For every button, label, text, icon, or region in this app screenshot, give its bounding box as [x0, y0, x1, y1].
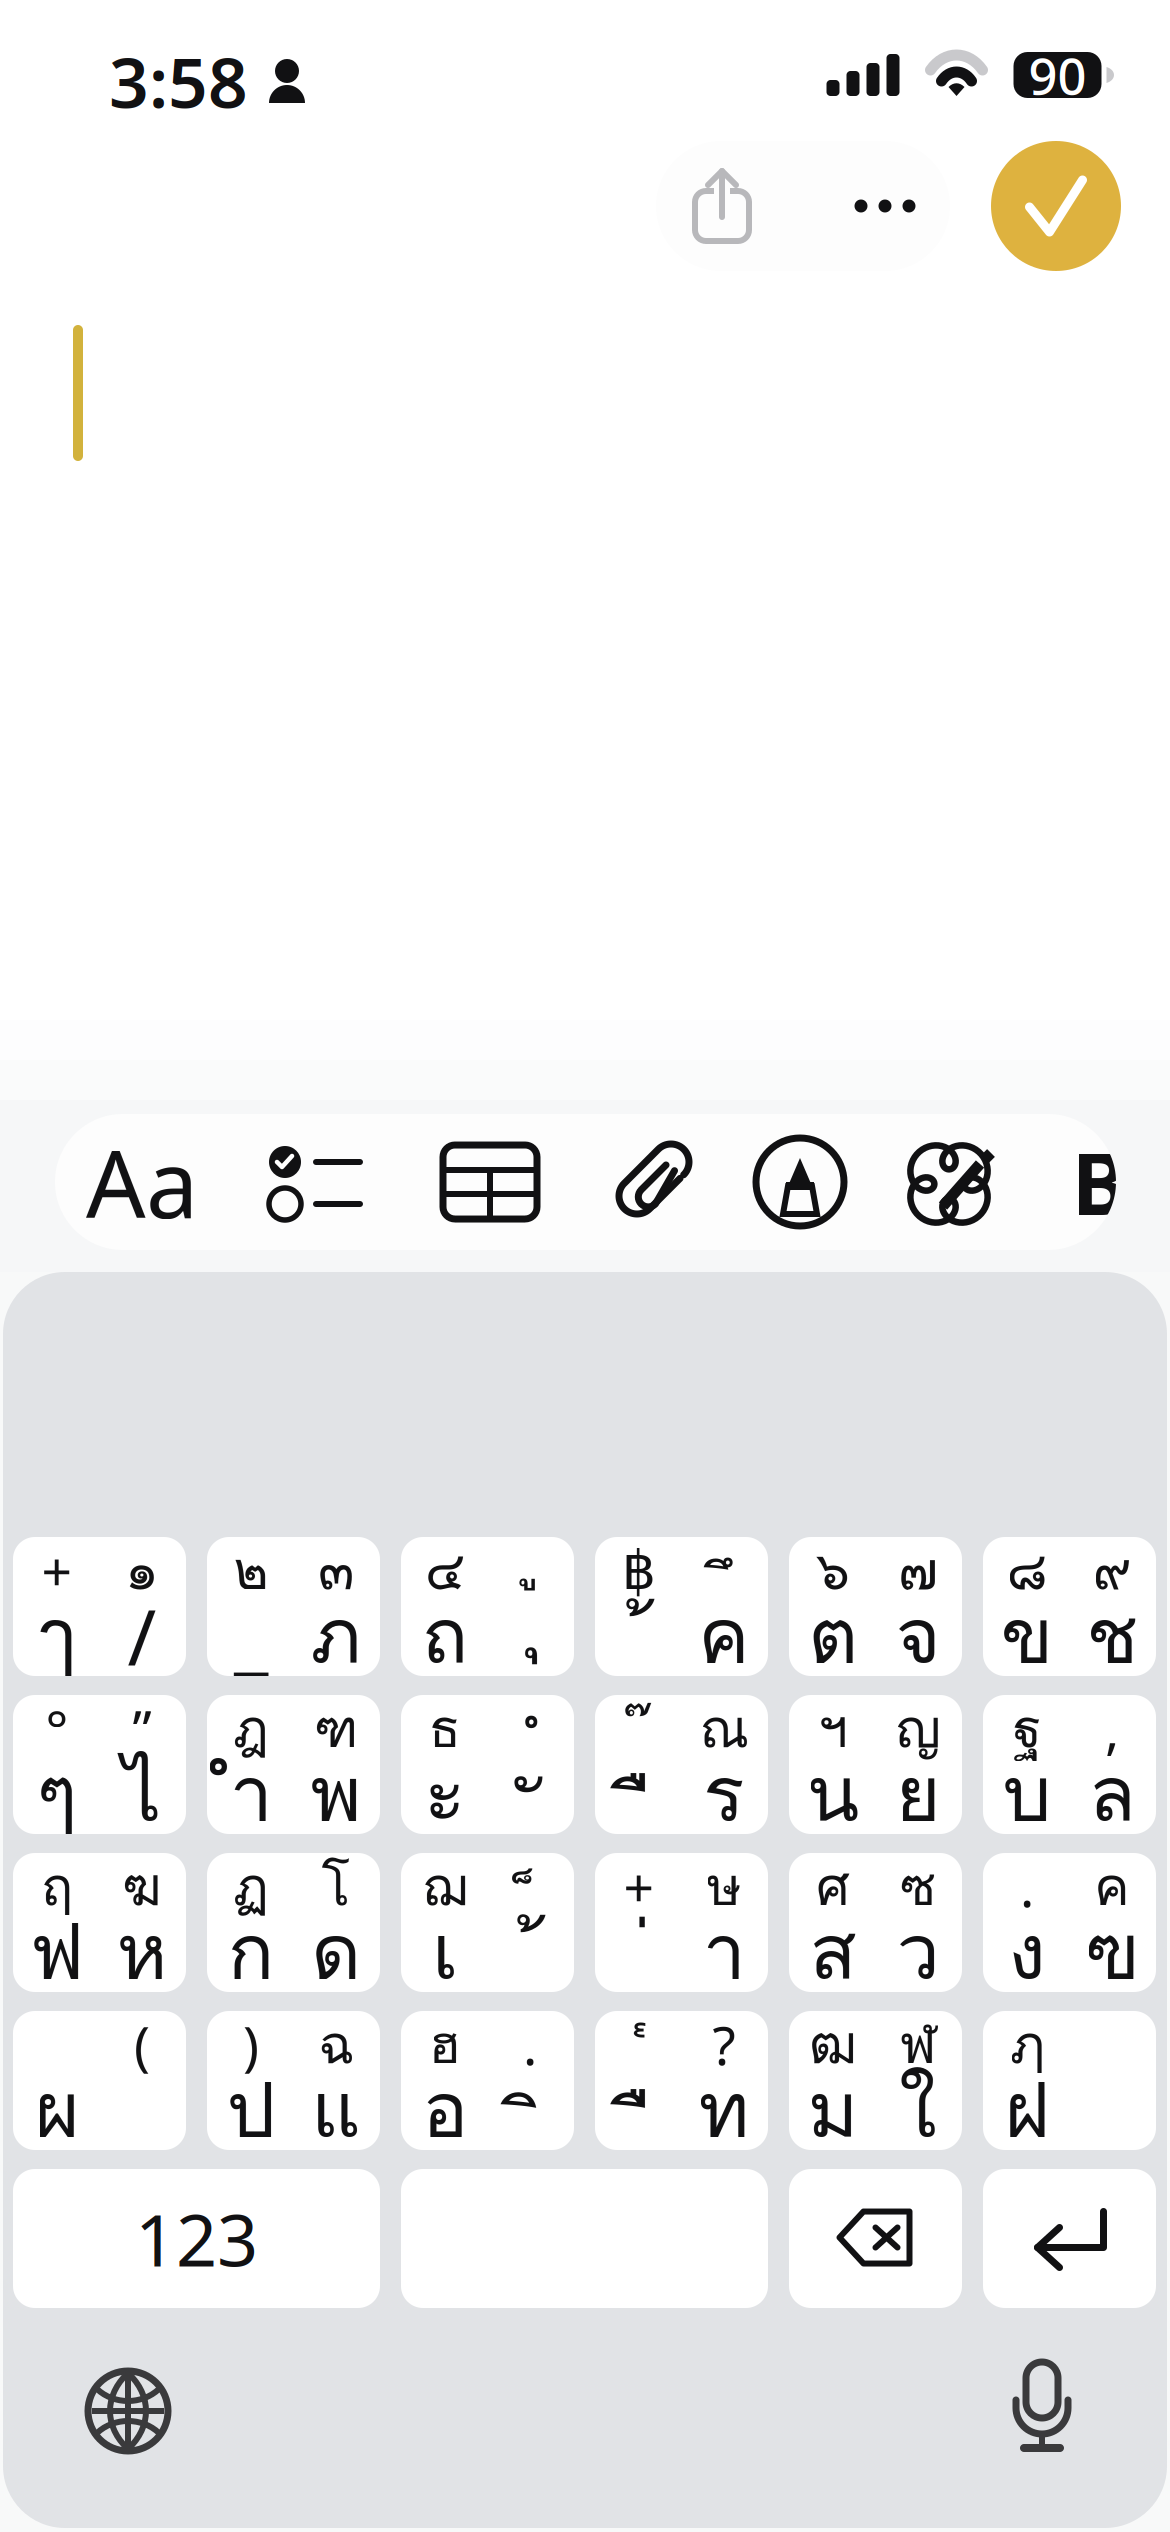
staticText: +	[623, 1851, 654, 1922]
staticText: 123	[135, 2191, 258, 2286]
button[interactable]: ๒	[207, 1537, 380, 1676]
staticText: ฏ	[233, 1845, 269, 1928]
button[interactable]: Bold	[1070, 1114, 1130, 1250]
button[interactable]: ฏ	[207, 1853, 380, 1992]
staticText: ฦ	[1009, 2003, 1044, 2086]
staticText: ฒ	[809, 2003, 857, 2086]
staticText: ห	[116, 1892, 167, 2011]
staticText: ภ	[310, 1576, 361, 1695]
button[interactable]: ฯ	[789, 1695, 962, 1834]
staticText: +	[41, 1535, 72, 1606]
button[interactable]: Draw	[725, 1114, 875, 1250]
staticText: ๆ	[36, 1734, 78, 1853]
staticText: ้	[626, 1593, 652, 1713]
button[interactable]: ๘	[983, 1537, 1156, 1676]
button[interactable]: ธ	[401, 1695, 574, 1834]
staticText: ธ	[428, 1687, 461, 1770]
staticText: ช	[1086, 1576, 1138, 1695]
staticText: ็	[521, 1857, 539, 1940]
button[interactable]: Checklist	[242, 1114, 392, 1250]
button[interactable]: ฒ	[789, 2011, 962, 2150]
staticText: 90	[1028, 41, 1086, 109]
button[interactable]: ฤ	[13, 1853, 186, 1992]
button[interactable]: Markup	[876, 1114, 1026, 1250]
staticText: ํ	[521, 1699, 539, 1782]
button[interactable]: ๖	[789, 1537, 962, 1676]
button[interactable]: Attach file	[578, 1114, 728, 1250]
staticText: ญ	[895, 1687, 940, 1770]
button[interactable]: +	[595, 1853, 768, 1992]
staticText: ่	[626, 1909, 652, 2029]
staticText: B	[1071, 1125, 1128, 1239]
button[interactable]: Table	[415, 1114, 565, 1250]
staticText: .	[523, 2009, 537, 2080]
button[interactable]: .	[983, 1853, 1156, 1992]
staticText: า	[702, 1892, 745, 2011]
staticText: ย	[895, 1734, 940, 1853]
button[interactable]: ฮ	[401, 2011, 574, 2150]
staticText: ๅ	[38, 1576, 76, 1695]
button[interactable]: ฌ	[401, 1853, 574, 1992]
staticText: ม	[807, 2050, 858, 2169]
button[interactable]: )	[207, 2011, 380, 2150]
button[interactable]: +	[13, 1537, 186, 1676]
staticText: ๘	[1006, 1529, 1047, 1612]
staticText: ๔	[425, 1529, 465, 1612]
button[interactable]: ศ	[789, 1853, 962, 1992]
staticText: )	[243, 2009, 259, 2080]
staticText: แ	[311, 2050, 361, 2169]
button[interactable]: Text format	[67, 1114, 217, 1250]
staticText: ๗	[898, 1529, 938, 1612]
button[interactable]: 123	[13, 2169, 380, 2308]
staticText: ๎	[630, 2015, 648, 2098]
staticText: ด	[311, 1892, 361, 2011]
staticText: (	[134, 2009, 150, 2080]
staticText: ?	[712, 2009, 735, 2080]
staticText: 3:58	[109, 35, 248, 127]
button[interactable]: ๊	[595, 1695, 768, 1834]
staticText: ก	[227, 1892, 274, 2011]
staticText: ค	[698, 1576, 750, 1695]
staticText: ,	[1105, 1693, 1119, 1764]
button[interactable]: Dictate	[1011, 2358, 1073, 2456]
button[interactable]: ๎	[595, 2011, 768, 2150]
button[interactable]: ๔	[401, 1537, 574, 1676]
button[interactable]: ฎ	[207, 1695, 380, 1834]
staticText: ฐ	[1012, 1687, 1041, 1770]
staticText: ไ	[122, 1734, 161, 1853]
button[interactable]: ฦ	[983, 2011, 1156, 2150]
staticText: ง	[1008, 1892, 1046, 2011]
staticText: ร	[703, 1734, 745, 1853]
staticText: ใ	[899, 2050, 937, 2169]
staticText: จ	[895, 1576, 940, 1695]
staticText: ้	[517, 1909, 543, 2029]
button[interactable]: ฐ	[983, 1695, 1156, 1834]
staticText: ค	[1094, 1845, 1130, 1928]
staticText: ฎ	[233, 1687, 269, 1770]
staticText: ฝ	[1004, 2050, 1049, 2169]
staticText: ำ	[229, 1734, 272, 1853]
button[interactable]: Return	[983, 2169, 1156, 2308]
button[interactable]: °	[13, 1695, 186, 1834]
staticText: ั	[517, 1751, 543, 1871]
staticText: ื	[626, 2067, 652, 2187]
staticText: ฯ	[818, 1687, 848, 1770]
button[interactable]: ฿	[595, 1537, 768, 1676]
staticText: ล	[1088, 1734, 1135, 1853]
staticText: เ	[432, 1892, 458, 2011]
staticText: .	[1020, 1851, 1034, 1922]
button[interactable]: Share	[657, 141, 787, 271]
staticText: ฃ	[1084, 1892, 1139, 2011]
button[interactable]	[13, 2011, 186, 2150]
staticText: ฉ	[318, 2003, 354, 2086]
staticText: พ	[310, 1734, 361, 1853]
button[interactable]: More options	[826, 141, 944, 271]
button[interactable]: Delete	[789, 2169, 962, 2308]
staticText: ๊	[630, 1699, 648, 1782]
staticText: ต	[808, 1576, 858, 1695]
staticText: ฮ	[428, 2003, 461, 2086]
button[interactable]: Done	[991, 141, 1121, 271]
staticText: น	[806, 1734, 859, 1853]
button[interactable]: Next keyboard	[88, 2371, 168, 2451]
